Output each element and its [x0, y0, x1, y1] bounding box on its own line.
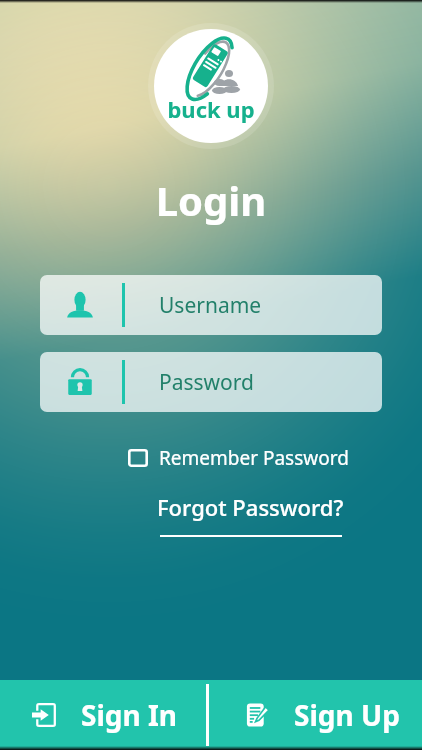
button[interactable]: Password — [40, 352, 382, 412]
button[interactable]: Sign In — [32, 680, 178, 750]
staticText: Login — [0, 173, 422, 227]
staticText: Sign Up — [294, 696, 400, 734]
staticText: Username — [159, 291, 262, 320]
staticText: Sign In — [81, 696, 178, 734]
button[interactable]: Sign Up — [245, 680, 400, 750]
staticText: buck up — [0, 94, 422, 124]
staticText: Password — [159, 368, 254, 397]
staticText: Remember Password — [159, 445, 349, 471]
staticText: Forgot Password? — [157, 492, 344, 522]
button[interactable]: Remember Password — [126, 441, 351, 475]
button[interactable]: Forgot Password? — [157, 492, 344, 537]
button[interactable]: Username — [40, 275, 382, 335]
